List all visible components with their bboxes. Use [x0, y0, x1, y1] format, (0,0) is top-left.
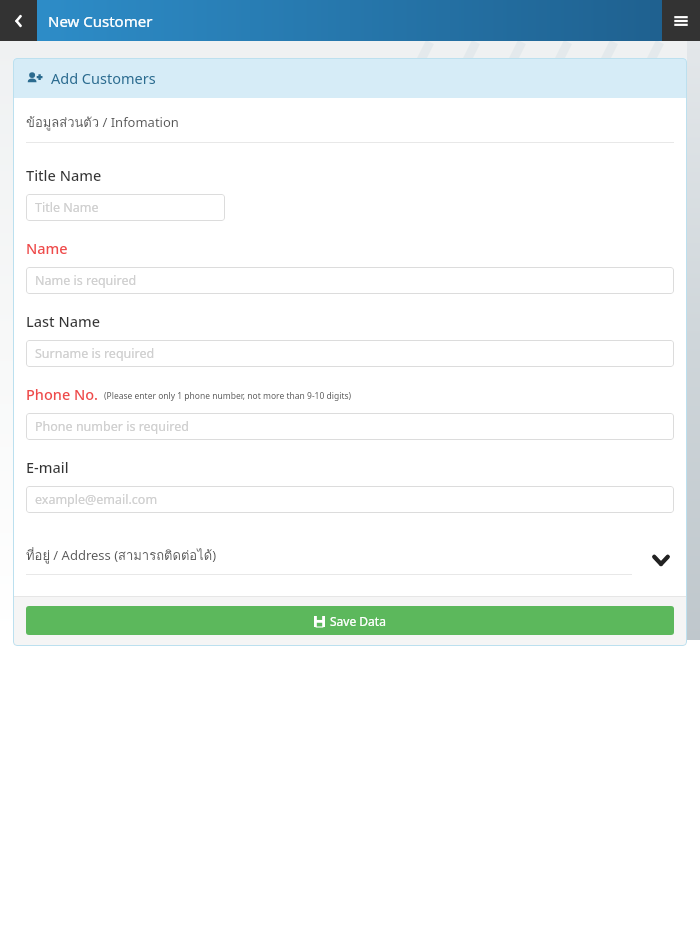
staticText: New Customer — [48, 11, 153, 31]
button[interactable]: Name is required — [26, 267, 674, 294]
staticText: Save Data — [330, 613, 386, 629]
button[interactable]: Phone number is required — [26, 413, 674, 440]
staticText: Name is required — [35, 272, 137, 289]
staticText: Name — [26, 238, 68, 258]
staticText: ที่อยู่ / Address (สามารถติดต่อได้) — [26, 545, 217, 566]
staticText: (Please enter only 1 phone number, not m… — [104, 390, 352, 402]
staticText: Phone No. — [26, 384, 99, 404]
button[interactable]: Save Data — [26, 606, 674, 635]
staticText: Surname is required — [35, 345, 155, 362]
staticText: E-mail — [26, 457, 69, 477]
button[interactable]: Add Customers — [26, 68, 674, 88]
staticText: example@email.com — [35, 491, 158, 508]
staticText: Title Name — [26, 165, 102, 185]
staticText: Last Name — [26, 311, 101, 331]
button[interactable]: ที่อยู่ / Address (สามารถติดต่อได้) — [26, 545, 674, 575]
staticText: Title Name — [35, 199, 99, 216]
button[interactable]: Menu — [662, 0, 700, 41]
button[interactable]: Title Name — [26, 194, 225, 221]
button[interactable]: Surname is required — [26, 340, 674, 367]
button[interactable]: example@email.com — [26, 486, 674, 513]
staticText: Phone number is required — [35, 418, 189, 435]
staticText: Add Customers — [51, 68, 156, 88]
other: Expand address — [648, 547, 674, 573]
button[interactable]: Back — [0, 0, 37, 41]
staticText: ข้อมูลส่วนตัว / Infomation — [26, 112, 179, 133]
